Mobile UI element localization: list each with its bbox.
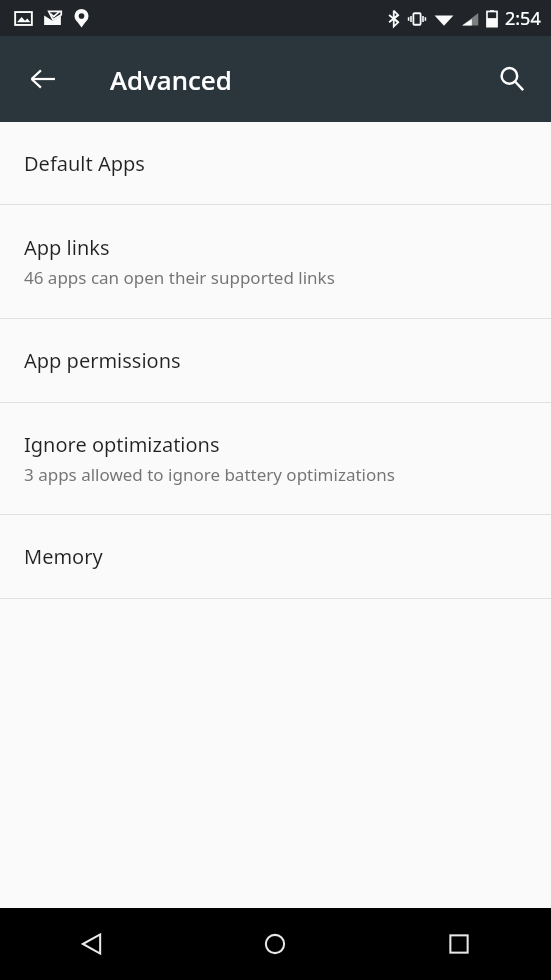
staticText: 3 apps allowed to ignore battery optimiz… bbox=[24, 463, 395, 486]
button[interactable]: App permissions bbox=[0, 319, 551, 402]
button[interactable]: Recent apps bbox=[367, 908, 551, 980]
button[interactable]: App links bbox=[0, 205, 551, 318]
staticText: 46 apps can open their supported links bbox=[24, 266, 335, 289]
button[interactable]: Default Apps bbox=[0, 122, 551, 204]
staticText: App permissions bbox=[24, 347, 181, 374]
button[interactable]: Back bbox=[0, 908, 183, 980]
button[interactable]: Ignore optimizations bbox=[0, 403, 551, 514]
button[interactable]: Back bbox=[15, 51, 71, 107]
staticText: Advanced bbox=[110, 62, 232, 97]
staticText: Ignore optimizations bbox=[24, 431, 220, 458]
staticText: App links bbox=[24, 234, 110, 261]
button[interactable]: Home bbox=[183, 908, 367, 980]
staticText: Default Apps bbox=[24, 150, 145, 177]
button[interactable]: Memory bbox=[0, 515, 551, 598]
staticText: Memory bbox=[24, 543, 103, 570]
staticText: 2:54 bbox=[505, 6, 541, 31]
button[interactable]: Search bbox=[484, 51, 540, 107]
